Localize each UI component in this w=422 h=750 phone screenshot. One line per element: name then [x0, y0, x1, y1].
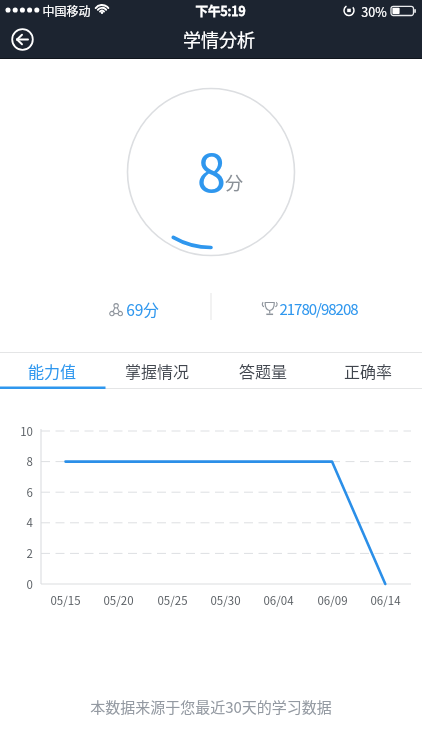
staticText: 掌握情况 [125, 359, 190, 382]
staticText: 06/09 [317, 592, 348, 608]
staticText: 05/25 [157, 592, 188, 608]
staticText: 下午5:19 [195, 1, 246, 19]
button[interactable]: 能力值 [0, 353, 105, 388]
button[interactable]: 掌握情况 [105, 353, 210, 388]
staticText: 05/15 [50, 592, 81, 608]
staticText: 69分 [126, 298, 159, 320]
button[interactable]: 答题量 [211, 353, 316, 388]
button[interactable]: 正确率 [316, 353, 421, 388]
staticText: 05/20 [103, 592, 134, 608]
staticText: 2 [26, 545, 33, 562]
staticText: 答题量 [239, 359, 288, 382]
button[interactable] [6, 23, 39, 56]
staticText: 21780/98208 [279, 298, 358, 320]
staticText: 0 [26, 576, 33, 593]
staticText: 06/04 [263, 592, 294, 608]
staticText: 8 [26, 453, 33, 470]
staticText: 10 [20, 423, 33, 440]
staticText: 30% [361, 2, 387, 20]
staticText: 学情分析 [183, 26, 255, 52]
staticText: 中国移动 [42, 2, 91, 19]
staticText: 05/30 [210, 592, 241, 608]
staticText: 正确率 [344, 359, 393, 382]
staticText: 8 [197, 132, 226, 207]
staticText: 本数据来源于您最近30天的学习数据 [90, 696, 332, 718]
staticText: 4 [26, 514, 33, 531]
staticText: 能力值 [28, 359, 77, 382]
staticText: 06/14 [370, 592, 401, 608]
staticText: 分 [225, 169, 243, 195]
staticText: 6 [26, 484, 33, 501]
